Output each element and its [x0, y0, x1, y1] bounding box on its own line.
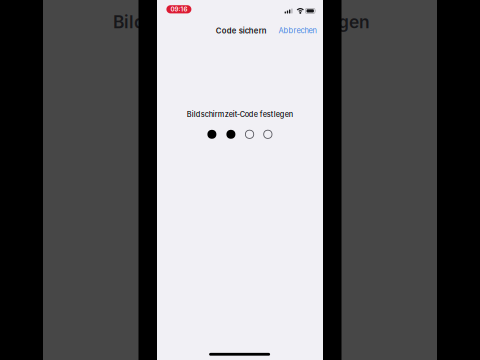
- staticText: 09:16: [170, 5, 187, 13]
- staticText: Code sichern: [216, 26, 267, 35]
- button[interactable]: Code sichern: [213, 22, 269, 39]
- staticText: Abbrechen: [279, 26, 317, 35]
- staticText: Bildschirmzeit-Code festlegen: [113, 11, 370, 32]
- button[interactable]: Abbrechen: [277, 22, 319, 39]
- staticText: Bildschirmzeit-Code festlegen: [187, 110, 293, 119]
